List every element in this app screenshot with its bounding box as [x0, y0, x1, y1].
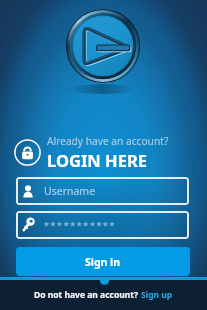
staticText: Sign up — [141, 289, 173, 301]
staticText: Already have an account? — [47, 134, 169, 148]
staticText: Username — [44, 184, 96, 198]
button[interactable]: Sign up — [141, 289, 173, 301]
staticText: LOGIN HERE — [47, 149, 147, 171]
staticText: *********** — [44, 219, 117, 231]
staticText: Do not have an account? — [34, 289, 141, 301]
button[interactable]: *********** — [16, 211, 189, 239]
button[interactable]: Sign in — [16, 247, 190, 276]
button[interactable]: Username — [16, 177, 189, 205]
staticText: Sign in — [85, 255, 121, 269]
